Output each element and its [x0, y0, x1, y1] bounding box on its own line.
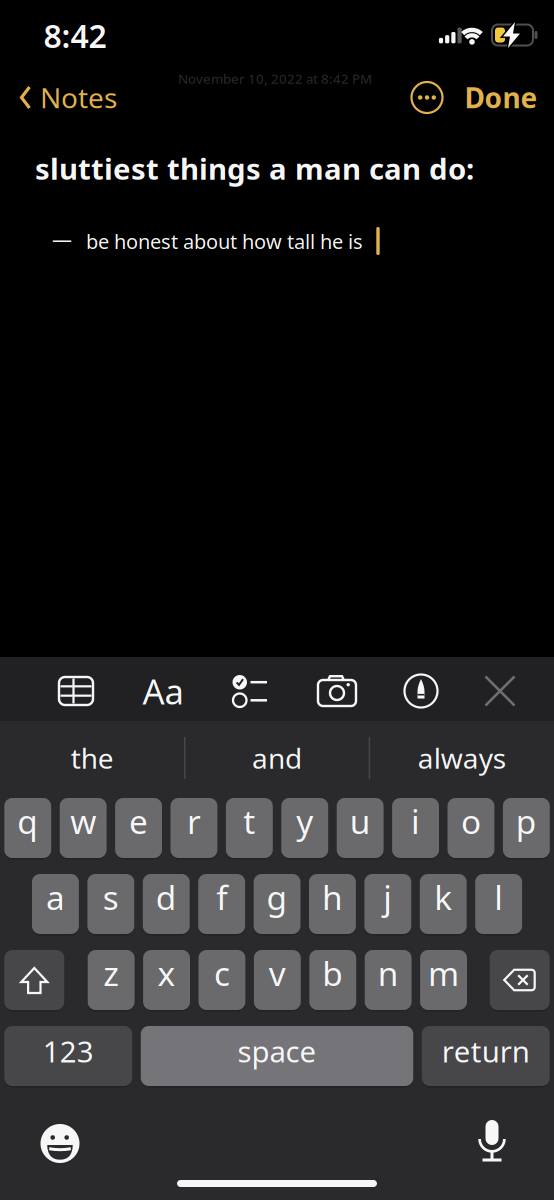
staticText: c [214, 951, 230, 995]
staticText: q [17, 799, 38, 843]
button[interactable]: w [60, 798, 107, 858]
button[interactable]: s [87, 874, 134, 934]
staticText: 8:42 [43, 14, 106, 57]
staticText: space [237, 1031, 316, 1070]
staticText: p [516, 799, 537, 843]
staticText: n [378, 951, 399, 995]
button[interactable]: space [141, 1026, 413, 1086]
staticText: l [494, 875, 503, 919]
staticText: t [243, 799, 255, 843]
button[interactable]: o [447, 798, 494, 858]
button[interactable]: t [226, 798, 273, 858]
button[interactable]: f [198, 874, 245, 934]
button[interactable]: j [364, 874, 411, 934]
staticText: f [216, 875, 227, 919]
button[interactable]: always [372, 729, 552, 787]
button[interactable]: l [475, 874, 522, 934]
button[interactable]: x [143, 950, 190, 1010]
button[interactable]: and [187, 729, 367, 787]
staticText: s [103, 875, 119, 919]
button[interactable]: Camera [317, 675, 357, 707]
button[interactable]: Shift [4, 950, 64, 1010]
staticText: November 10, 2022 at 8:42 PM [178, 70, 372, 87]
button[interactable]: Emoji [40, 1123, 80, 1163]
staticText: o [461, 799, 481, 843]
staticText: x [157, 951, 175, 995]
button[interactable]: d [143, 874, 190, 934]
button[interactable]: Delete [490, 950, 550, 1010]
button[interactable]: Markup [404, 674, 437, 707]
button[interactable]: r [170, 798, 217, 858]
staticText: j [383, 875, 392, 919]
button[interactable]: u [337, 798, 384, 858]
button[interactable]: Dismiss keyboard [485, 676, 514, 705]
staticText: return [442, 1031, 530, 1070]
button[interactable]: y [281, 798, 328, 858]
button[interactable]: c [198, 950, 245, 1010]
button[interactable]: n [365, 950, 412, 1010]
staticText: z [103, 951, 119, 995]
staticText: e [129, 799, 148, 843]
button[interactable]: i [392, 798, 439, 858]
button[interactable]: m [420, 950, 467, 1010]
button[interactable]: p [503, 798, 550, 858]
staticText: b [322, 951, 343, 995]
button[interactable]: 123 [4, 1026, 132, 1086]
staticText: the [71, 739, 114, 777]
staticText: m [428, 951, 459, 995]
button[interactable]: Checklist [232, 673, 268, 709]
button[interactable]: k [420, 874, 467, 934]
button[interactable]: q [4, 798, 51, 858]
staticText: v [269, 951, 286, 995]
button[interactable]: More [411, 82, 442, 113]
staticText: y [296, 799, 313, 843]
staticText: 123 [43, 1031, 94, 1070]
staticText: h [322, 875, 343, 919]
button[interactable]: z [88, 950, 135, 1010]
staticText: be honest about how tall he is [86, 228, 363, 255]
staticText: g [267, 875, 288, 919]
staticText: i [411, 799, 420, 843]
button[interactable]: h [309, 874, 356, 934]
button[interactable]: return [422, 1026, 550, 1086]
button[interactable]: g [254, 874, 300, 934]
button[interactable]: a [32, 874, 79, 934]
button[interactable]: the [2, 729, 182, 787]
staticText: r [187, 799, 201, 843]
staticText: Done [464, 79, 537, 116]
staticText: w [70, 799, 96, 843]
button[interactable]: e [115, 798, 162, 858]
staticText: a [46, 875, 65, 919]
staticText: sluttiest things a man can do: [35, 149, 474, 188]
staticText: and [252, 739, 302, 777]
button[interactable]: Dictation [477, 1120, 507, 1164]
button[interactable]: Insert table [59, 677, 93, 705]
staticText: always [418, 739, 506, 777]
staticText: Notes [40, 79, 117, 116]
staticText: u [350, 799, 371, 843]
button[interactable]: Notes [20, 79, 117, 116]
button[interactable]: b [309, 950, 356, 1010]
button[interactable]: v [254, 950, 301, 1010]
staticText: k [434, 875, 452, 919]
button[interactable]: Format [142, 668, 183, 714]
staticText: — [52, 226, 72, 253]
staticText: Aa [142, 668, 183, 714]
button[interactable]: Done [464, 79, 537, 116]
staticText: d [156, 875, 177, 919]
